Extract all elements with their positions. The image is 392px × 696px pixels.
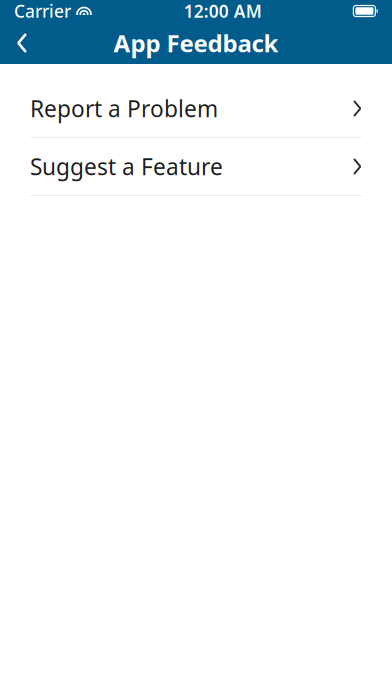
staticText: Report a Problem — [30, 93, 218, 123]
staticText: App Feedback — [113, 27, 278, 59]
button[interactable]: Back — [0, 22, 44, 64]
staticText: Suggest a Feature — [30, 151, 223, 181]
button[interactable]: Report a Problem — [0, 80, 392, 137]
button[interactable]: Suggest a Feature — [0, 138, 392, 195]
staticText: 12:00 AM — [184, 0, 262, 22]
staticText: Carrier — [14, 0, 71, 22]
